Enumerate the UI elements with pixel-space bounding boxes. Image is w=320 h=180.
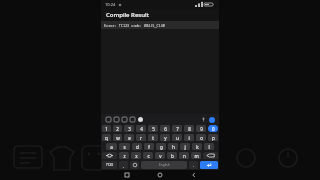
button[interactable]: 6 [160, 125, 170, 132]
button[interactable]: Toolbar 3 [129, 116, 135, 122]
button[interactable]: Home [152, 170, 168, 180]
button[interactable]: English [141, 161, 187, 169]
staticText: b [171, 153, 174, 159]
staticText: 8 [188, 126, 191, 132]
button[interactable]: Toolbar 0 [105, 116, 111, 122]
staticText: q [105, 135, 108, 141]
button[interactable]: Recents [119, 170, 135, 180]
staticText: 1 [105, 126, 108, 132]
staticText: c [147, 153, 150, 159]
button[interactable]: a [106, 143, 117, 150]
button[interactable]: q [102, 134, 111, 141]
button[interactable]: d [132, 143, 142, 150]
button[interactable]: t [148, 134, 158, 141]
button[interactable]: n [179, 152, 189, 159]
button[interactable]: Period [189, 161, 198, 169]
staticText: h [172, 144, 175, 150]
button[interactable]: w [113, 134, 122, 141]
button[interactable]: z [119, 152, 129, 159]
button[interactable]: Settings [208, 116, 215, 123]
staticText: 5 [152, 126, 155, 132]
staticText: 7 [176, 126, 179, 132]
staticText: Compile Result [106, 11, 149, 19]
staticText: j [184, 144, 186, 150]
button[interactable]: u [172, 134, 182, 141]
button[interactable]: s [119, 143, 130, 150]
staticText: m [194, 153, 199, 159]
staticText: . [193, 163, 195, 168]
button[interactable]: Sticker [137, 116, 143, 122]
staticText: s [123, 144, 126, 150]
button[interactable]: v [155, 152, 165, 159]
button[interactable]: 7 [172, 125, 182, 132]
staticText: z [123, 153, 126, 159]
staticText: p [212, 135, 215, 141]
staticText: r [140, 135, 142, 141]
button[interactable]: 8 [184, 125, 194, 132]
staticText: t [152, 135, 154, 141]
staticText: Error: TC123 code: 004JS_C140 [104, 23, 165, 28]
button[interactable]: 4 [136, 125, 146, 132]
staticText: f [148, 144, 150, 150]
staticText: v [159, 153, 162, 159]
staticText: l [208, 144, 210, 150]
staticText: 0 [212, 126, 215, 132]
button[interactable]: o [196, 134, 206, 141]
staticText: 10:24 [105, 2, 116, 7]
button[interactable]: j [180, 143, 190, 150]
button[interactable]: Enter [200, 161, 218, 169]
staticText: y [164, 135, 167, 141]
button[interactable]: Toolbar 2 [121, 116, 127, 122]
button[interactable]: 1 [102, 125, 111, 132]
button[interactable]: ?123 [102, 161, 117, 169]
button[interactable]: x [131, 152, 141, 159]
staticText: 6 [164, 126, 167, 132]
button[interactable]: p [208, 134, 218, 141]
button[interactable]: l [204, 143, 214, 150]
button[interactable]: 3 [124, 125, 134, 132]
button[interactable]: m [191, 152, 201, 159]
button[interactable]: Back [186, 170, 202, 180]
staticText: i [188, 135, 190, 141]
staticText: ?123 [106, 163, 113, 167]
staticText: English [159, 163, 170, 167]
staticText: 4 [140, 126, 143, 132]
staticText: 2 [116, 126, 119, 132]
button[interactable]: e [124, 134, 134, 141]
button[interactable]: 0 [208, 125, 218, 132]
button[interactable]: Emoji [130, 161, 139, 169]
staticText: u [176, 135, 179, 141]
staticText: 3 [128, 126, 131, 132]
button[interactable]: i [184, 134, 194, 141]
staticText: o [200, 135, 203, 141]
button[interactable]: Shift [102, 152, 117, 159]
button[interactable]: b [167, 152, 177, 159]
button[interactable]: g [156, 143, 166, 150]
staticText: e [128, 135, 131, 141]
staticText: n [183, 153, 186, 159]
button[interactable]: 2 [113, 125, 122, 132]
staticText: , [123, 163, 125, 168]
button[interactable]: Voice input [200, 116, 206, 122]
button[interactable]: Backspace [203, 152, 218, 159]
button[interactable]: f [144, 143, 154, 150]
staticText: w [116, 135, 120, 141]
staticText: d [136, 144, 139, 150]
staticText: a [110, 144, 113, 150]
button[interactable]: c [143, 152, 153, 159]
button[interactable]: y [160, 134, 170, 141]
button[interactable]: k [192, 143, 202, 150]
staticText: k [196, 144, 199, 150]
button[interactable]: h [168, 143, 178, 150]
staticText: 9 [200, 126, 203, 132]
button[interactable]: 9 [196, 125, 206, 132]
button[interactable]: Toolbar 1 [113, 116, 119, 122]
button[interactable]: Comma [119, 161, 128, 169]
button[interactable]: 5 [148, 125, 158, 132]
staticText: x [135, 153, 138, 159]
staticText: g [160, 144, 163, 150]
button[interactable]: r [136, 134, 146, 141]
